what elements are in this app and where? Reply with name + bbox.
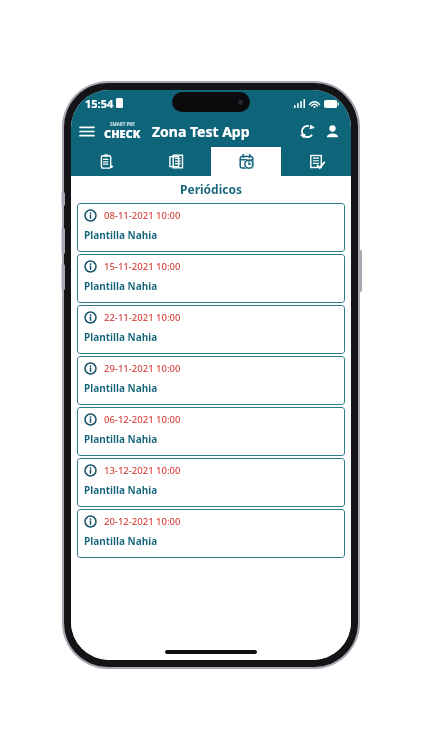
staticText: 29-11-2021 10:00 bbox=[104, 362, 181, 375]
staticText: Plantilla Nahia bbox=[84, 330, 158, 344]
staticText: Plantilla Nahia bbox=[84, 534, 158, 548]
button[interactable]: 08-11-2021 10:00 bbox=[77, 203, 345, 252]
staticText: Plantilla Nahia bbox=[84, 483, 158, 497]
button[interactable]: 29-11-2021 10:00 bbox=[77, 356, 345, 405]
staticText: Zona Test App bbox=[152, 122, 294, 141]
staticText: Plantilla Nahia bbox=[84, 381, 158, 395]
button[interactable]: Profile bbox=[321, 118, 351, 145]
staticText: CHECK bbox=[104, 126, 141, 141]
staticText: Plantilla Nahia bbox=[84, 432, 158, 446]
staticText: 20-12-2021 10:00 bbox=[104, 515, 181, 528]
button[interactable]: 22-11-2021 10:00 bbox=[77, 305, 345, 354]
button[interactable]: Menu bbox=[71, 120, 103, 143]
button[interactable]: Pending checks bbox=[71, 147, 141, 176]
button[interactable]: Completed checks bbox=[281, 147, 351, 176]
button[interactable]: SMART PRE bbox=[103, 121, 142, 142]
button[interactable]: 13-12-2021 10:00 bbox=[77, 458, 345, 507]
staticText: Plantilla Nahia bbox=[84, 279, 158, 293]
staticText: 22-11-2021 10:00 bbox=[104, 311, 181, 324]
button[interactable]: 20-12-2021 10:00 bbox=[77, 509, 345, 558]
button[interactable]: Periodic checks bbox=[211, 147, 281, 176]
staticText: SMART PRE bbox=[110, 121, 135, 127]
staticText: 08-11-2021 10:00 bbox=[104, 209, 181, 222]
staticText: 06-12-2021 10:00 bbox=[104, 413, 181, 426]
staticText: 13-12-2021 10:00 bbox=[104, 464, 181, 477]
staticText: 15-11-2021 10:00 bbox=[104, 260, 181, 273]
button[interactable]: 06-12-2021 10:00 bbox=[77, 407, 345, 456]
button[interactable]: Documents bbox=[141, 147, 211, 176]
staticText: 15:54 bbox=[85, 96, 114, 111]
button[interactable]: Sync bbox=[294, 118, 321, 145]
staticText: Plantilla Nahia bbox=[84, 228, 158, 242]
button[interactable]: 15-11-2021 10:00 bbox=[77, 254, 345, 303]
staticText: Periódicos bbox=[71, 181, 351, 197]
